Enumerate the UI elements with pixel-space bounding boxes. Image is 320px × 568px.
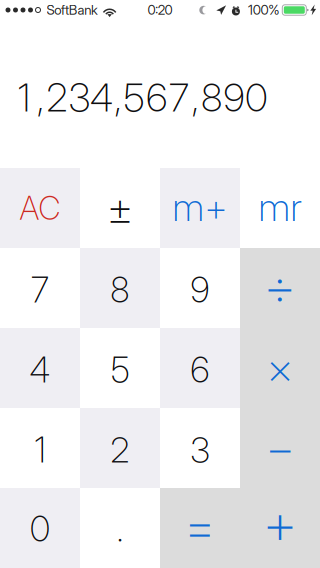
staticText: 2 — [46, 74, 67, 121]
button[interactable]: + — [240, 488, 320, 568]
staticText: 3 — [190, 429, 209, 471]
staticText: 0 — [245, 74, 267, 121]
button[interactable]: 5 — [80, 328, 160, 408]
button[interactable]: = — [160, 488, 240, 568]
button[interactable]: . — [80, 488, 160, 568]
staticText: 0 — [30, 508, 50, 550]
staticText: ± — [107, 182, 133, 236]
button[interactable]: 3 — [160, 408, 240, 488]
button[interactable]: 7 — [0, 248, 80, 328]
staticText: 6 — [190, 349, 209, 391]
button[interactable]: m+ — [160, 168, 240, 248]
button[interactable]: 1 — [0, 408, 80, 488]
staticText: , — [191, 74, 199, 121]
staticText: − — [266, 419, 294, 477]
staticText: 1 — [34, 429, 45, 471]
staticText: 1 — [18, 74, 31, 121]
staticText: , — [114, 74, 122, 121]
staticText: 6 — [146, 74, 167, 121]
staticText: 5 — [111, 349, 129, 391]
staticText: m+ — [172, 184, 227, 230]
staticText: 8 — [201, 74, 222, 121]
button[interactable]: 2 — [80, 408, 160, 488]
staticText: ÷ — [264, 254, 296, 318]
staticText: 4 — [29, 349, 50, 391]
button[interactable]: 8 — [80, 248, 160, 328]
button[interactable]: 6 — [160, 328, 240, 408]
staticText: mr — [258, 184, 301, 230]
staticText: 5 — [124, 74, 145, 121]
button[interactable]: ± — [80, 168, 160, 248]
button[interactable]: − — [240, 408, 320, 488]
staticText: , — [36, 74, 44, 121]
staticText: 2 — [110, 429, 129, 471]
staticText: + — [263, 488, 297, 558]
button[interactable]: × — [240, 328, 320, 408]
staticText: 7 — [169, 74, 189, 121]
staticText: 9 — [224, 74, 245, 121]
staticText: . — [116, 508, 123, 550]
button[interactable]: 4 — [0, 328, 80, 408]
staticText: 3 — [69, 74, 90, 121]
button[interactable]: AC — [0, 168, 80, 248]
staticText: 4 — [90, 74, 113, 121]
button[interactable]: ÷ — [240, 248, 320, 328]
button[interactable]: mr — [240, 168, 320, 248]
staticText: × — [267, 341, 293, 395]
staticText: AC — [19, 189, 60, 227]
staticText: SoftBank — [46, 2, 98, 18]
staticText: 9 — [190, 269, 209, 311]
staticText: 100% — [248, 2, 279, 18]
staticText: 8 — [110, 269, 129, 311]
staticText: 0:20 — [147, 2, 172, 18]
staticText: 7 — [31, 269, 49, 311]
button[interactable]: 9 — [160, 248, 240, 328]
staticText: = — [184, 494, 216, 558]
button[interactable]: 0 — [0, 488, 80, 568]
